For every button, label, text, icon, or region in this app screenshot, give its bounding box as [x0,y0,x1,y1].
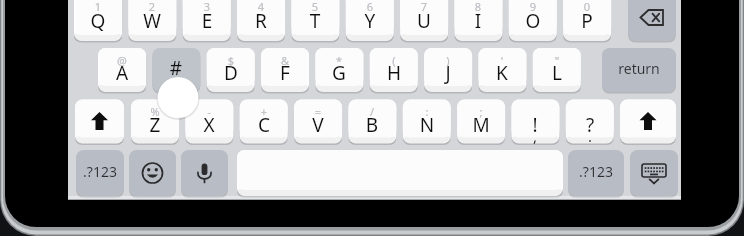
staticText: # [152,55,200,85]
staticText: 8 [454,0,502,18]
staticText: X [185,112,233,142]
button[interactable]: Shift [75,100,124,144]
button[interactable] [563,0,611,41]
button[interactable]: Hide keyboard [630,150,678,196]
button[interactable] [237,0,285,41]
staticText: 2 [128,0,176,18]
staticText: F [261,60,309,90]
staticText: & [261,53,309,72]
button[interactable] [98,48,146,92]
staticText: = [294,104,342,123]
staticText: ) [424,53,472,72]
staticText: % [131,104,179,123]
button[interactable] [185,100,233,144]
staticText: R [237,8,285,38]
staticText: : [403,104,451,123]
staticText: ? [566,112,614,142]
button[interactable] [454,0,502,41]
staticText: ! [511,112,559,142]
staticText: G [315,60,363,90]
staticText: K [478,60,526,90]
button[interactable] [183,0,231,41]
staticText: O [509,8,557,38]
staticText: U [400,8,448,38]
button[interactable] [152,48,200,92]
button[interactable] [566,100,614,144]
staticText: return [602,59,676,81]
staticText: / [348,104,396,123]
staticText: * [315,53,363,72]
button[interactable] [291,0,339,41]
staticText: D [207,60,255,90]
button[interactable] [400,0,448,41]
button[interactable]: Emoji [129,150,176,196]
button[interactable] [240,100,288,144]
staticText: ' [478,53,526,72]
button[interactable] [424,48,472,92]
staticText: V [294,112,342,142]
staticText: ; [457,104,505,123]
button[interactable] [261,48,309,92]
button[interactable] [207,48,255,92]
button[interactable] [74,0,122,41]
staticText: N [403,112,451,142]
staticText: + [240,104,288,123]
staticText: 1 [74,0,122,18]
staticText: 9 [509,0,557,18]
staticText: 4 [237,0,285,18]
staticText: @ [98,53,146,72]
staticText: I [454,8,502,38]
staticText: , [511,126,559,144]
staticText: 6 [346,0,394,18]
button[interactable] [457,100,505,144]
staticText: $ [207,53,255,72]
button[interactable] [509,0,557,41]
button[interactable] [131,100,179,144]
button[interactable] [370,48,418,92]
button[interactable] [76,150,124,196]
button[interactable]: Delete [628,0,676,41]
button[interactable] [346,0,394,41]
staticText: P [563,8,611,38]
button[interactable]: Dictation [181,150,228,196]
staticText: E [183,8,231,38]
staticText: M [457,112,505,142]
staticText: Z [131,112,179,142]
staticText: ( [370,53,418,72]
button[interactable]: Space [237,150,563,196]
staticText: L [533,60,581,90]
button[interactable] [128,0,176,41]
staticText: 3 [183,0,231,18]
staticText: 5 [291,0,339,18]
staticText: " [533,53,581,72]
button[interactable]: Shift [620,100,676,144]
staticText: C [240,112,288,142]
button[interactable] [568,150,624,196]
button[interactable] [403,100,451,144]
button[interactable] [294,100,342,144]
staticText: J [424,60,472,90]
staticText: .?123 [76,162,124,184]
staticText: B [348,112,396,142]
staticText: W [128,8,176,38]
staticText: T [291,8,339,38]
staticText: A [98,60,146,90]
staticText: Y [346,8,394,38]
button[interactable] [348,100,396,144]
button[interactable] [533,48,581,92]
button[interactable] [511,100,559,144]
button[interactable] [602,48,676,92]
staticText: 7 [400,0,448,18]
staticText: Q [74,8,122,38]
staticText: 0 [563,0,611,18]
staticText: . [566,126,614,144]
staticText: .?123 [568,162,624,184]
button[interactable] [315,48,363,92]
staticText: - [185,104,233,123]
button[interactable] [478,48,526,92]
staticText: H [370,60,418,90]
